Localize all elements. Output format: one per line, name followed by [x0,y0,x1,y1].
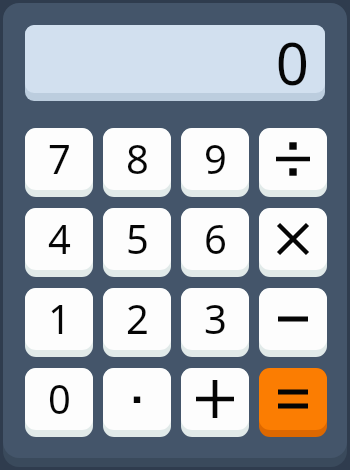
button[interactable]: 1 [25,288,93,357]
staticText: 5 [126,211,149,265]
staticText: 1 [48,291,71,345]
button[interactable]: Decimal point [103,368,171,437]
button[interactable]: 0 [25,368,93,437]
button[interactable]: 6 [181,208,249,277]
button[interactable]: 0 [25,25,325,101]
button[interactable]: 8 [103,128,171,197]
button[interactable]: Minus [259,288,327,357]
staticText: 6 [204,211,227,265]
button[interactable]: Divide [259,128,327,197]
button[interactable]: Multiply [259,208,327,277]
button[interactable]: 7 [25,128,93,197]
staticText: 2 [126,291,149,345]
staticText: 7 [48,131,71,185]
staticText: 0 [48,371,71,425]
staticText: 0 [275,25,309,91]
button[interactable]: 3 [181,288,249,357]
staticText: 3 [204,291,227,345]
button[interactable]: 4 [25,208,93,277]
staticText: 9 [204,131,227,185]
button[interactable]: 2 [103,288,171,357]
button[interactable]: Equals [259,368,327,437]
button[interactable]: Plus [181,368,249,437]
button[interactable]: 5 [103,208,171,277]
staticText: 8 [126,131,149,185]
staticText: 4 [48,211,71,265]
button[interactable]: 9 [181,128,249,197]
